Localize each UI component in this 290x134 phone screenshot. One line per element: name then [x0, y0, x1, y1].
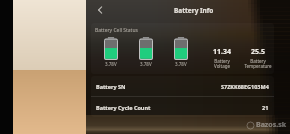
button[interactable]: Battery Cycle Count: [91, 97, 274, 117]
staticText: S7ZKK68EG103M4: [221, 83, 269, 90]
staticText: 3.78V: [105, 61, 117, 67]
staticText: Battery Voltage: [207, 58, 237, 69]
staticText: 3.78V: [175, 61, 187, 67]
staticText: Bazos.sk: [256, 120, 287, 130]
staticText: Battery Cycle Count: [96, 104, 151, 111]
staticText: 11.34: [213, 47, 231, 57]
staticText: Battery Temperature: [244, 58, 272, 69]
staticText: Battery Info: [174, 6, 214, 15]
staticText: Battery SN: [96, 83, 126, 90]
staticText: 25.5: [251, 47, 265, 57]
staticText: 3.78V: [140, 61, 152, 67]
staticText: 21: [262, 104, 269, 111]
button[interactable]: Battery SN: [91, 76, 274, 96]
button[interactable]: Back: [93, 3, 107, 17]
staticText: Battery Cell Status: [95, 27, 138, 34]
